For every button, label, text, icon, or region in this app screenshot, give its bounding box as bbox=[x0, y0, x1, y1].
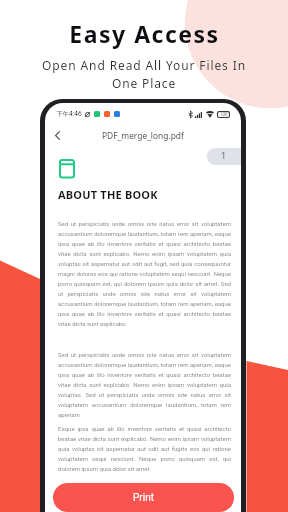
staticText: Sed ut perspiciatis unde omnis iste natu… bbox=[58, 351, 231, 418]
button[interactable]: Back bbox=[46, 124, 68, 146]
staticText: 下午4:46 bbox=[56, 110, 82, 118]
staticText: Open And Read All Your Files In One Plac… bbox=[42, 57, 246, 92]
button[interactable]: Print bbox=[53, 483, 234, 512]
staticText: PDF_merge_long.pdf bbox=[102, 130, 184, 141]
staticText: Sed ut perspiciatis unde omnis iste natu… bbox=[58, 220, 231, 327]
staticText: ABOUT THE BOOK bbox=[58, 187, 158, 202]
button[interactable]: 1 bbox=[207, 148, 241, 165]
staticText: Eaque ipsa quae ab illo inventore verita… bbox=[58, 425, 231, 472]
staticText: Easy Access bbox=[69, 18, 220, 49]
staticText: 1 bbox=[221, 151, 227, 162]
staticText: 100 bbox=[220, 112, 228, 117]
staticText: Print bbox=[133, 492, 154, 504]
